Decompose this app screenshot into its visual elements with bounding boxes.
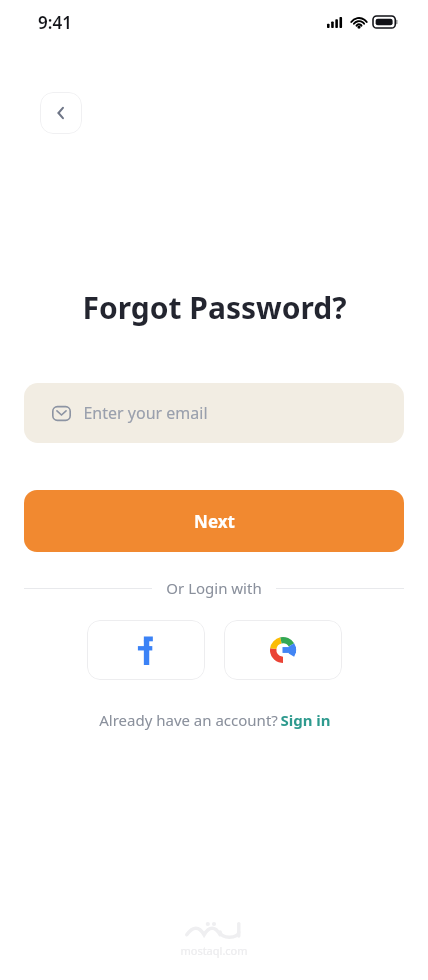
staticText: Next [194, 510, 235, 533]
staticText: mostaql.com [180, 943, 248, 958]
button[interactable]: Sign in with Facebook [87, 620, 205, 680]
button[interactable]: Next [24, 490, 404, 552]
staticText: 9:41 [38, 11, 72, 34]
staticText: Forgot Password? [82, 287, 347, 328]
staticText: Or Login with [166, 578, 262, 598]
staticText: Enter your email [83, 402, 208, 424]
button[interactable]: Enter your email [24, 383, 404, 443]
staticText: Sign in [280, 710, 331, 730]
button[interactable]: Sign in with Google [224, 620, 342, 680]
button[interactable]: Back [40, 92, 82, 134]
button[interactable]: Already have an account? [0, 710, 428, 730]
staticText: Already have an account? [97, 710, 280, 730]
